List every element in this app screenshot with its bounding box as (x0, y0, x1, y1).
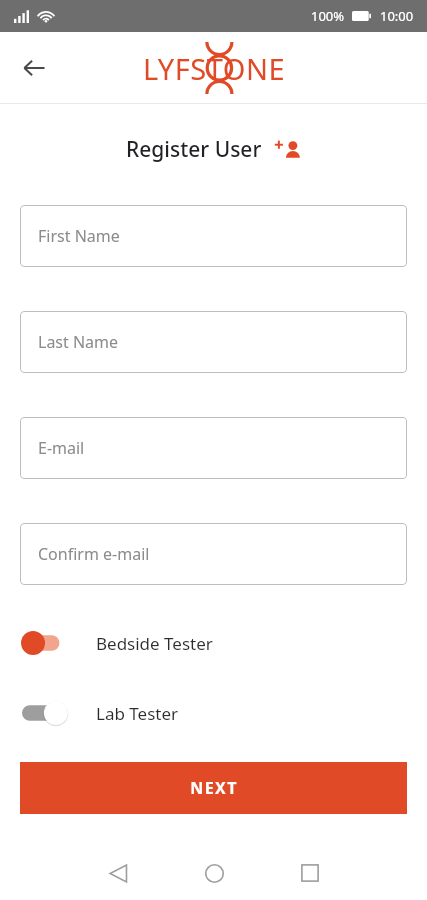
staticText: Register User (126, 135, 262, 164)
button[interactable]: Bedside Tester (0, 619, 427, 667)
button[interactable]: First Name (20, 205, 407, 267)
staticText: LYFSTONE (143, 49, 286, 88)
staticText: 10:00 (380, 7, 414, 25)
button[interactable]: Back (10, 44, 58, 92)
staticText: E-mail (38, 437, 85, 459)
staticText: 100% (311, 7, 345, 25)
button[interactable]: Lab Tester (0, 689, 427, 737)
button[interactable]: E-mail (20, 417, 407, 479)
staticText: Last Name (38, 331, 119, 353)
button[interactable]: Recent apps (274, 849, 346, 897)
staticText: Lab Tester (96, 702, 179, 725)
staticText: First Name (38, 225, 120, 247)
button[interactable]: Back (82, 849, 154, 897)
staticText: Bedside Tester (96, 632, 213, 655)
button[interactable]: NEXT (20, 762, 407, 814)
staticText: NEXT (190, 777, 238, 799)
button[interactable]: Home (178, 849, 250, 897)
button[interactable]: Last Name (20, 311, 407, 373)
staticText: Confirm e-mail (38, 543, 150, 565)
button[interactable]: Confirm e-mail (20, 523, 407, 585)
